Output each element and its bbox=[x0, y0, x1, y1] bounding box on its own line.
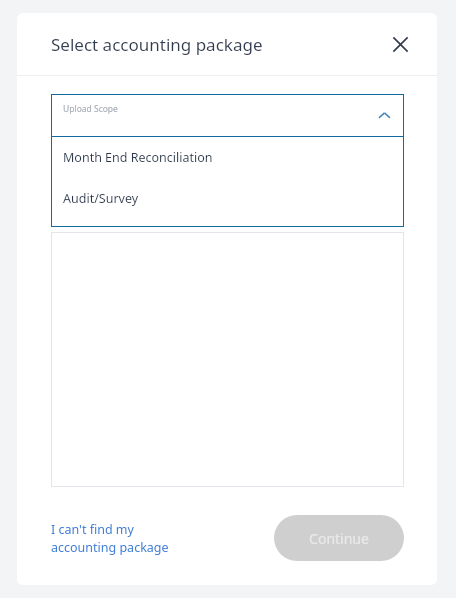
button[interactable]: Continue bbox=[274, 515, 404, 561]
staticText: Upload Scope bbox=[63, 103, 118, 115]
button[interactable]: Upload Scope bbox=[51, 94, 404, 136]
button[interactable]: Close bbox=[383, 27, 417, 61]
staticText: Continue bbox=[309, 529, 369, 548]
staticText: I can't find my accounting package bbox=[51, 521, 169, 556]
button[interactable]: I can't find my accounting package bbox=[51, 521, 181, 556]
button[interactable]: Audit/Survey bbox=[51, 178, 404, 219]
other: Collapse list bbox=[373, 104, 395, 126]
staticText: Select accounting package bbox=[51, 33, 263, 56]
button[interactable]: Month End Reconciliation bbox=[51, 137, 404, 178]
staticText: Audit/Survey bbox=[63, 190, 139, 207]
staticText: Month End Reconciliation bbox=[63, 149, 213, 166]
